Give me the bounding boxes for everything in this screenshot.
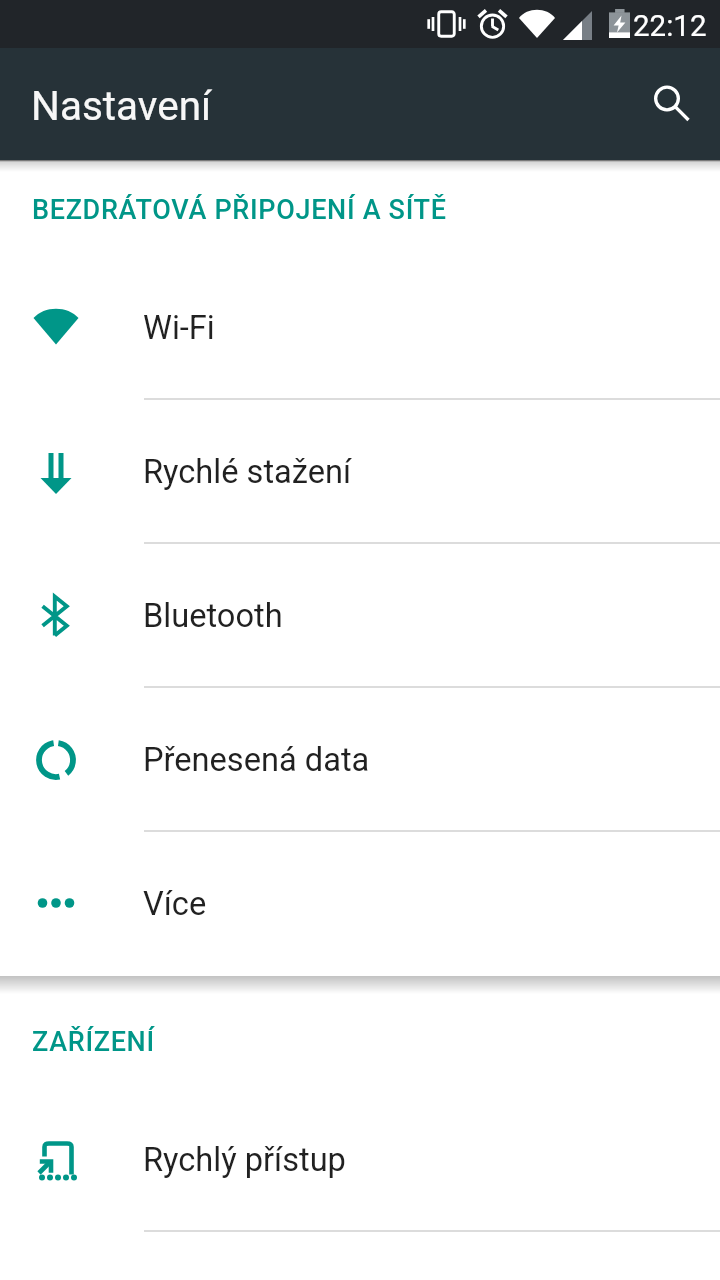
button[interactable]: Přenesená data	[0, 686, 720, 830]
button[interactable]: Wi-Fi	[0, 254, 720, 398]
staticText: 22:12	[633, 9, 707, 44]
staticText: Více	[143, 885, 207, 923]
staticText: Nastavení	[31, 82, 212, 129]
staticText: Wi-Fi	[143, 309, 215, 347]
button[interactable]: Rychlý přístup	[0, 1086, 720, 1230]
staticText: ZAŘÍZENÍ	[32, 1026, 155, 1058]
staticText: Bluetooth	[143, 597, 283, 635]
staticText: BEZDRÁTOVÁ PŘIPOJENÍ A SÍTĚ	[32, 194, 447, 226]
staticText: Přenesená data	[143, 741, 370, 779]
staticText: Rychlý přístup	[143, 1141, 346, 1179]
button[interactable]: Search	[623, 60, 711, 148]
button[interactable]: Rychlé stažení	[0, 398, 720, 542]
button[interactable]: Bluetooth	[0, 542, 720, 686]
staticText: Rychlé stažení	[143, 453, 352, 491]
button[interactable]: Více	[0, 830, 720, 974]
